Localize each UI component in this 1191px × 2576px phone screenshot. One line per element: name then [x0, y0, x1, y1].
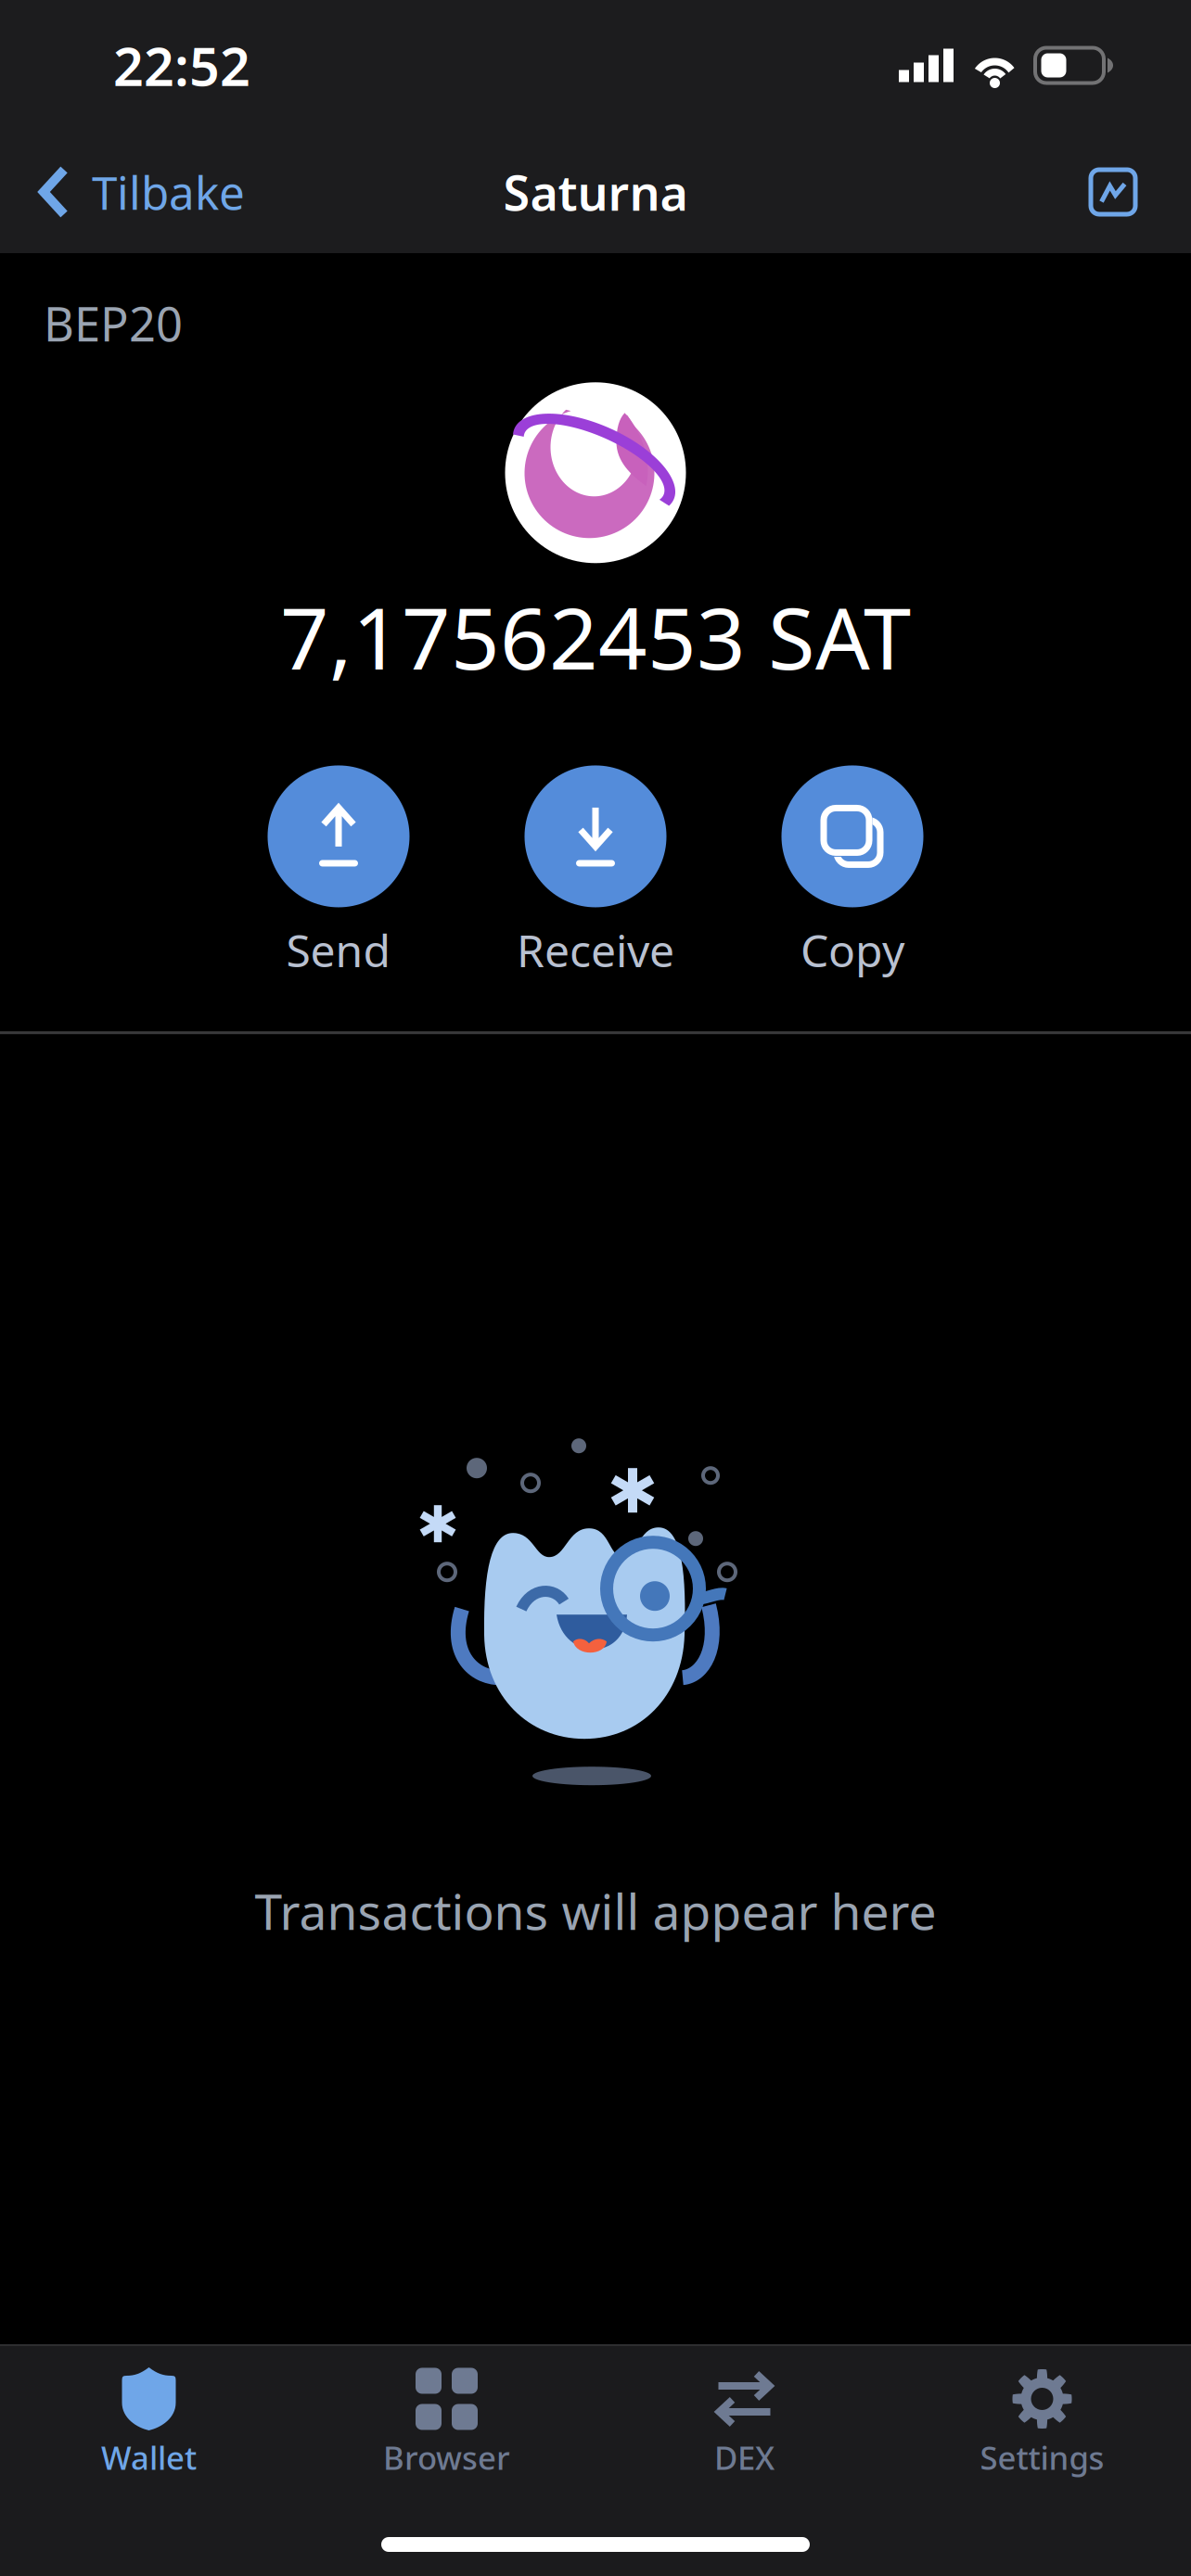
button[interactable]: DEX [595, 2363, 893, 2483]
staticText: Browser [383, 2436, 510, 2479]
staticText: DEX [714, 2436, 775, 2479]
staticText: 22:52 [113, 30, 250, 101]
button[interactable]: Price chart [1063, 151, 1191, 233]
staticText: Tilbake [92, 162, 245, 222]
staticText: Transactions will appear here [255, 1878, 936, 1944]
staticText: Settings [980, 2436, 1104, 2479]
staticText: Copy [800, 920, 904, 979]
staticText: BEP20 [44, 292, 183, 355]
staticText: Wallet [101, 2436, 197, 2479]
staticText: Send [286, 920, 391, 979]
button[interactable]: Browser [298, 2363, 595, 2483]
staticText: Saturna [503, 160, 688, 224]
button[interactable]: Tilbake [0, 143, 273, 241]
button[interactable]: Receive [467, 765, 724, 979]
button[interactable]: Settings [893, 2363, 1191, 2483]
button[interactable]: Copy [724, 765, 981, 979]
staticText: Receive [517, 920, 674, 979]
button[interactable]: Wallet [0, 2363, 298, 2483]
button[interactable]: Send [210, 765, 467, 979]
staticText: 7,17562453 SAT [280, 580, 911, 693]
